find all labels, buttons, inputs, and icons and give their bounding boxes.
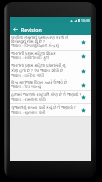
button[interactable]: Bookmark xyxy=(80,53,87,60)
button[interactable]: Bookmark xyxy=(80,94,87,101)
staticText: જવાબ : રામનાથ કોવિ xyxy=(11,97,46,102)
button[interactable]: Bookmark xyxy=(80,68,87,75)
staticText: હાલમાં ભારતના રાષ્ટ્રપતિ કોણ છે તે જણાવો… xyxy=(11,92,82,97)
staticText: કોણ હતા છે ? આ જવાબ શોધો છે xyxy=(11,68,64,73)
button[interactable]: હાલમાં ભારતના રાષ્ટ્રપતિ કોણ છે તે જણાવો… xyxy=(10,91,91,103)
button[interactable]: ભારતની પ્રથમ મહિલા શિક્ષક xyxy=(10,51,91,62)
staticText: જવાબ : ઇન્દિરા ગાંધી xyxy=(11,73,44,78)
staticText: ભારતની પ્રથમ મહિલા શિક્ષક xyxy=(11,51,56,56)
button[interactable]: પાણીના નમૂનાનું પૃથ્થક્કરણ કરતાં ને xyxy=(10,35,91,50)
staticText: 10:30 xyxy=(81,18,90,23)
staticText: ભારતના પ્રથમ મહિલા પ્રધાનમંત્રી નુ xyxy=(11,63,66,68)
button[interactable]: ગુજરાતનું રાજ્ય પક્ષી કયું છે તે જણાવો ? xyxy=(10,104,91,116)
staticText: ગુજરાતનું રાજ્ય પક્ષી કયું છે તે જણાવો ? xyxy=(11,105,76,110)
staticText: જવાબ : સુરખાબ પંખી xyxy=(11,110,46,115)
button[interactable]: વિશ્વ માતૃભાષા દિવસ ક્યારે ઉજવે છે xyxy=(10,80,91,90)
staticText: જવાબ : સવિતાબાઈ ફુલે xyxy=(11,55,50,60)
staticText: જવાબ : વિજાણુવિજ્ઞાન કેન્દ્રનુ xyxy=(11,43,59,48)
button[interactable]: Bookmark xyxy=(80,82,87,89)
staticText: Revision xyxy=(21,26,42,33)
staticText: વિજાણુનું નામ શું છે ? xyxy=(11,39,45,44)
button[interactable]: Bookmark xyxy=(80,39,87,46)
staticText: પાણીના નમૂનાનું પૃથ્થક્કરણ કરતાં ને xyxy=(11,35,69,40)
staticText: જવાબ : ૫૫ જાન્યુ xyxy=(11,84,42,89)
button[interactable]: Back xyxy=(10,23,21,35)
button[interactable]: ભારતના પ્રથમ મહિલા પ્રધાનમંત્રી નુ xyxy=(10,62,91,80)
staticText: વિશ્વ માતૃભાષા દિવસ ક્યારે ઉજવે છે xyxy=(11,80,67,85)
button[interactable]: Bookmark xyxy=(80,107,87,114)
